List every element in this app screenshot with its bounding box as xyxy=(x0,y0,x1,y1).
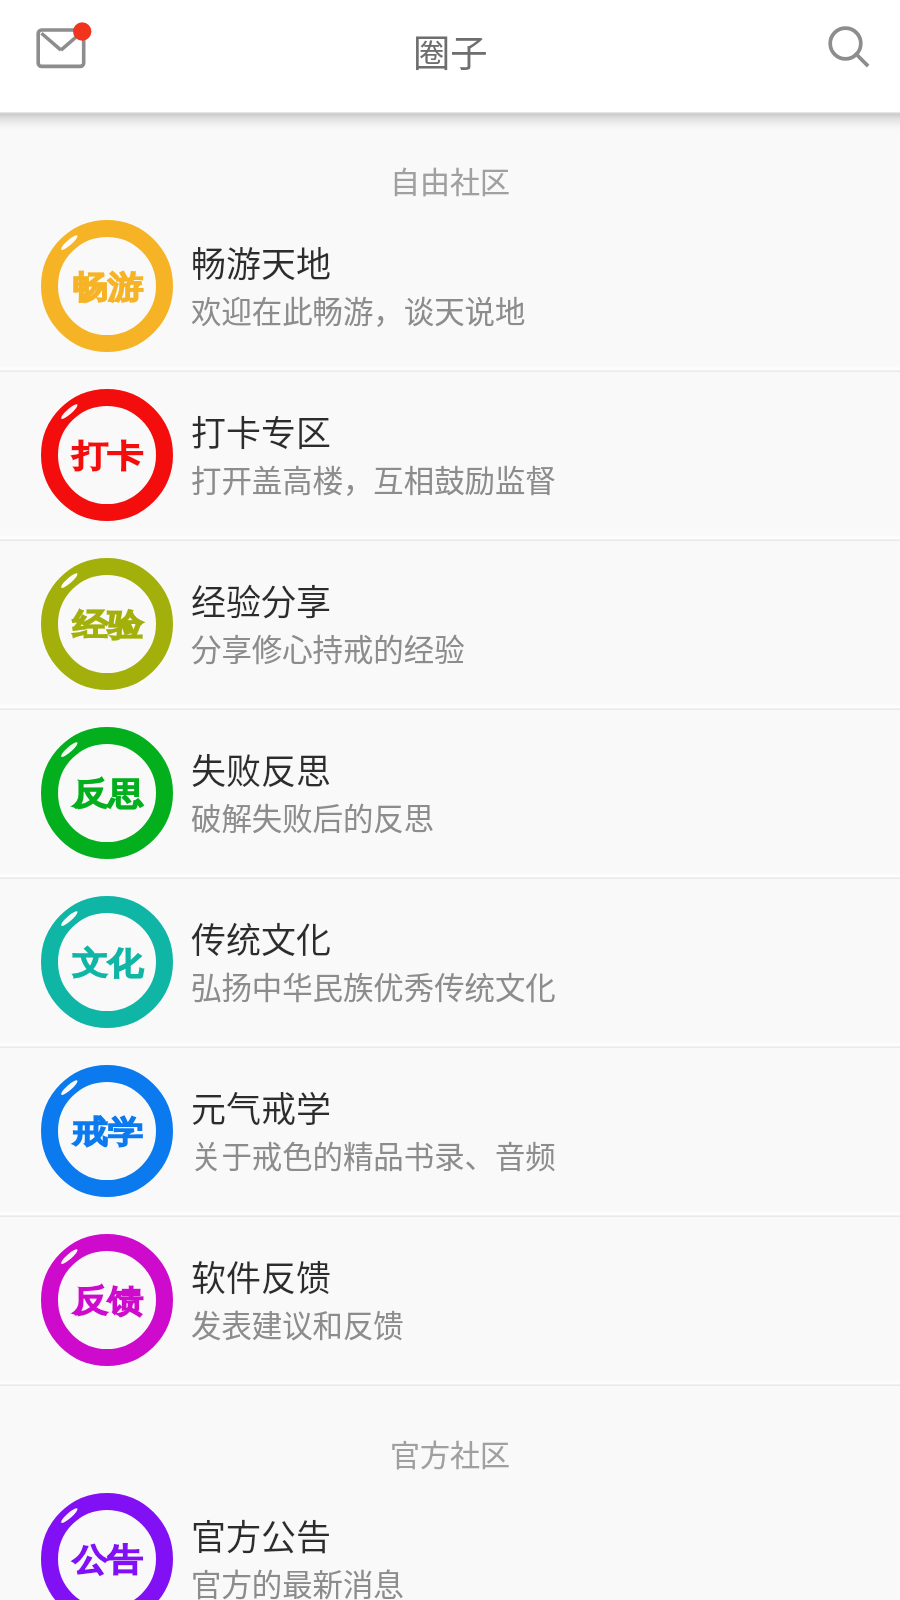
staticText: 打开盖高楼，互相鼓励监督 xyxy=(191,457,556,501)
staticText: 反思 xyxy=(72,774,143,814)
staticText: 官方的最新消息 xyxy=(191,1561,404,1600)
button[interactable]: 经验 xyxy=(0,540,900,709)
button[interactable]: 公告 xyxy=(0,1475,900,1600)
staticText: 畅游 xyxy=(72,267,143,307)
staticText: 经验 xyxy=(72,605,143,645)
button[interactable]: 畅游 xyxy=(0,202,900,371)
button[interactable]: 打卡 xyxy=(0,371,900,540)
staticText: 文化 xyxy=(72,943,143,983)
staticText: 自由社区 xyxy=(390,158,510,201)
staticText: 关于戒色的精品书录、音频 xyxy=(191,1133,556,1177)
staticText: 戒学 xyxy=(72,1112,143,1152)
staticText: 传统文化 xyxy=(191,912,332,963)
staticText: 分享修心持戒的经验 xyxy=(191,626,465,670)
staticText: 打卡 xyxy=(72,436,143,476)
staticText: 发表建议和反馈 xyxy=(191,1302,404,1346)
staticText: 畅游天地 xyxy=(191,236,332,287)
button[interactable]: 反馈 xyxy=(0,1216,900,1385)
button[interactable]: 戒学 xyxy=(0,1047,900,1216)
staticText: 软件反馈 xyxy=(191,1250,332,1301)
staticText: 官方公告 xyxy=(191,1509,332,1560)
staticText: 失败反思 xyxy=(191,743,332,794)
staticText: 反馈 xyxy=(72,1281,143,1321)
staticText: 打卡专区 xyxy=(191,405,332,456)
staticText: 公告 xyxy=(72,1540,143,1580)
button[interactable]: Search xyxy=(801,8,897,104)
staticText: 弘扬中华民族优秀传统文化 xyxy=(191,964,556,1008)
staticText: 经验分享 xyxy=(191,574,332,625)
staticText: 圈子 xyxy=(413,24,488,78)
staticText: 欢迎在此畅游，谈天说地 xyxy=(191,288,526,332)
staticText: 破解失败后的反思 xyxy=(191,795,435,839)
staticText: 官方社区 xyxy=(390,1431,510,1474)
button[interactable]: 文化 xyxy=(0,878,900,1047)
button[interactable]: 反思 xyxy=(0,709,900,878)
button[interactable]: Messages xyxy=(22,8,118,104)
staticText: 元气戒学 xyxy=(191,1081,332,1132)
